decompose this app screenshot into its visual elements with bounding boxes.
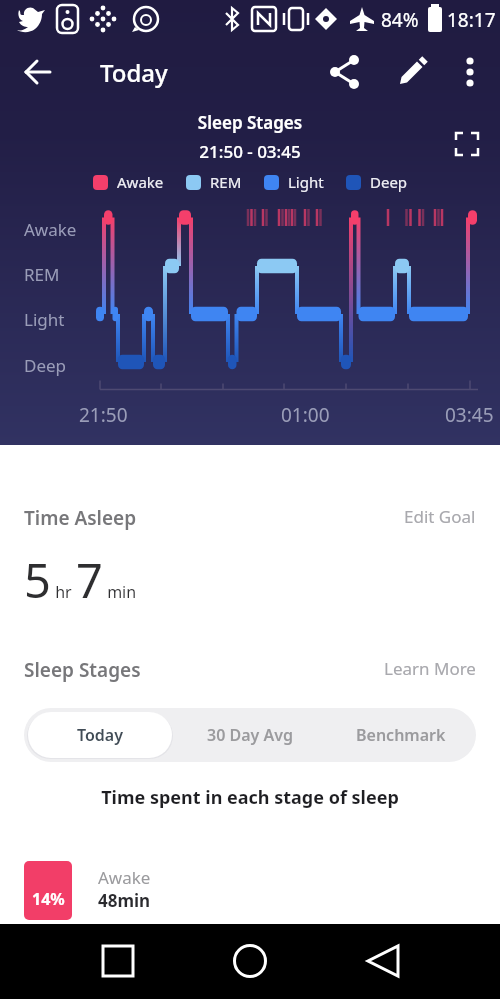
button[interactable]: 30 Day Avg	[174, 708, 326, 762]
button[interactable]: Today	[28, 712, 172, 758]
button[interactable]: 14%	[24, 861, 151, 920]
staticText: 5	[24, 548, 51, 612]
staticText: Time spent in each stage of sleep	[0, 785, 500, 810]
staticText: 18:17	[447, 7, 496, 33]
staticText: 84%	[381, 7, 419, 33]
button[interactable]	[233, 944, 267, 978]
staticText: Awake	[24, 218, 77, 241]
button[interactable]	[456, 133, 478, 155]
staticText: Today	[77, 724, 124, 746]
button[interactable]: Learn More	[384, 657, 476, 680]
staticText: 7	[76, 548, 103, 612]
staticText: Deep	[24, 354, 67, 377]
staticText: Awake	[98, 866, 151, 889]
staticText: Light	[24, 308, 65, 331]
button[interactable]	[396, 56, 428, 88]
button[interactable]	[103, 946, 133, 976]
staticText: REM	[24, 263, 60, 286]
staticText: Today	[100, 56, 168, 89]
staticText: 03:45	[445, 402, 494, 428]
button[interactable]	[458, 56, 482, 80]
button[interactable]	[330, 56, 362, 88]
staticText: 48min	[98, 889, 151, 912]
staticText: 30 Day Avg	[207, 724, 293, 746]
button[interactable]: Benchmark	[326, 708, 476, 762]
staticText: hr	[51, 581, 76, 603]
staticText: 01:00	[281, 402, 330, 428]
staticText: Sleep Stages	[24, 657, 141, 683]
staticText: REM	[210, 172, 242, 192]
button[interactable]	[26, 59, 52, 85]
staticText: 21:50	[79, 402, 128, 428]
staticText: Sleep Stages	[0, 111, 500, 134]
staticText: min	[103, 581, 137, 603]
staticText: Time Asleep	[24, 505, 137, 531]
staticText: Awake	[117, 172, 164, 192]
staticText: 14%	[32, 888, 65, 910]
button[interactable]	[368, 946, 398, 976]
staticText: 21:50 - 03:45	[0, 140, 500, 163]
staticText: Deep	[370, 172, 408, 192]
staticText: Benchmark	[356, 724, 446, 746]
staticText: Light	[288, 172, 324, 192]
button[interactable]: Edit Goal	[404, 505, 476, 528]
